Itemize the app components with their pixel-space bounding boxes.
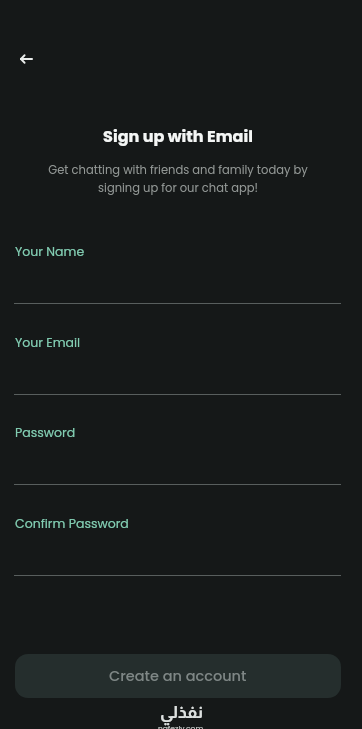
staticText: Get chatting with friends and family tod… [0, 162, 356, 196]
staticText: Create an account [109, 666, 247, 686]
button[interactable]: Confirm Password [0, 515, 362, 589]
staticText: Your Email [15, 334, 81, 351]
staticText: Confirm Password [15, 515, 129, 532]
staticText: nafezly.com [158, 723, 204, 729]
staticText: Password [15, 424, 76, 441]
button[interactable]: Your Email [0, 334, 362, 408]
button[interactable]: Create an account [15, 654, 341, 698]
staticText: Sign up with Email [0, 125, 356, 147]
button[interactable]: Your Name [0, 243, 362, 317]
staticText: Your Name [15, 243, 85, 260]
button[interactable]: Password [0, 424, 362, 498]
button[interactable]: Back [13, 45, 40, 72]
staticText: نفذلي [160, 703, 203, 722]
